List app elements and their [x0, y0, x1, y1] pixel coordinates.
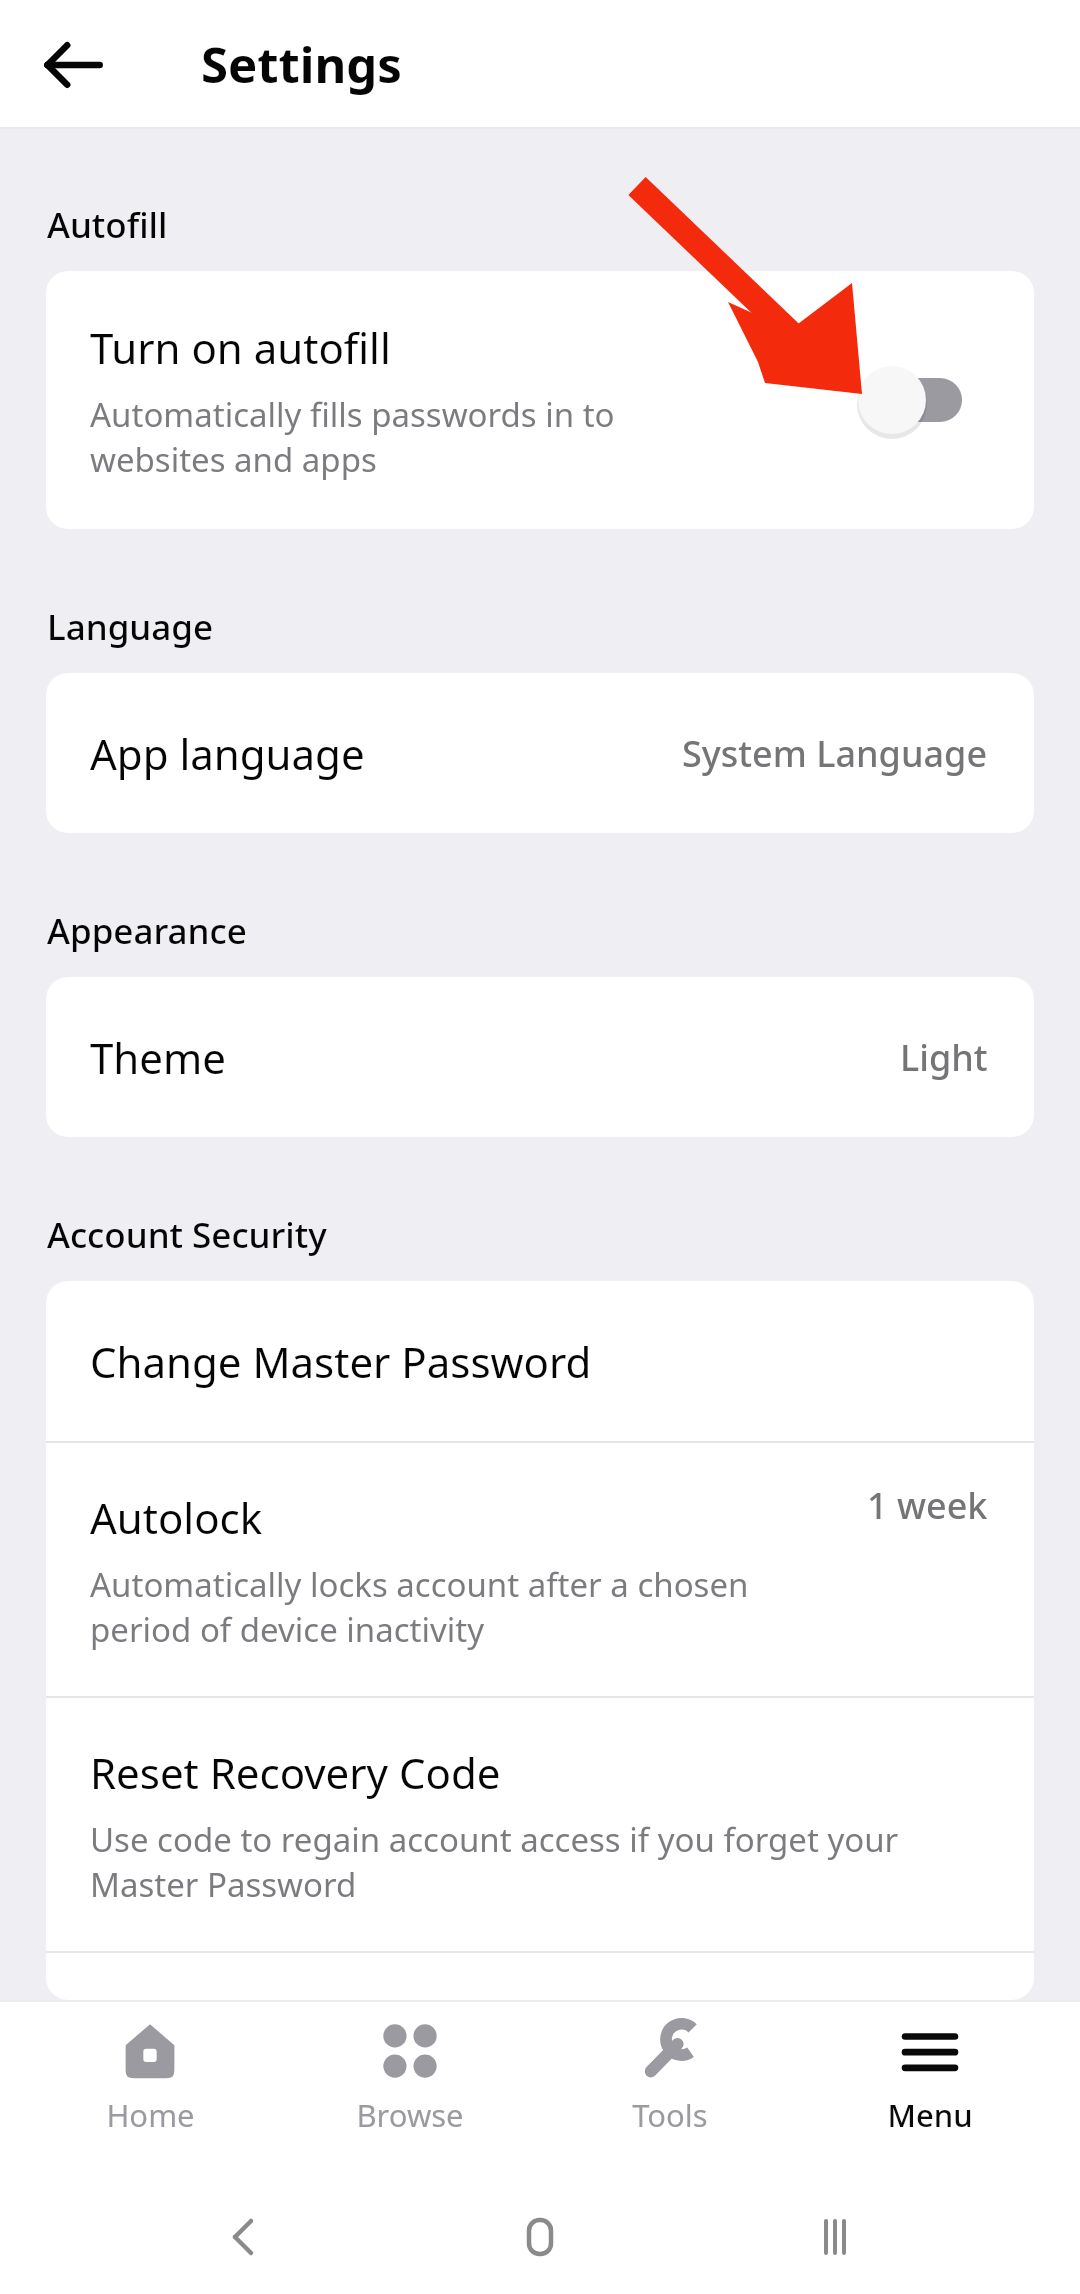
staticText: Theme [90, 1029, 226, 1086]
button[interactable]: Back [195, 2187, 295, 2287]
staticText: Reset Recovery Code [90, 1744, 501, 1801]
staticText: Appearance [47, 907, 247, 955]
button[interactable]: Change Master Password [46, 1281, 1034, 1441]
staticText: System Language [682, 729, 988, 778]
button[interactable]: Back [28, 20, 118, 110]
staticText: Tools [632, 2094, 708, 2136]
staticText: Use code to regain account access if you… [90, 1817, 990, 1906]
button[interactable]: Tools [560, 2022, 780, 2136]
staticText: App language [90, 725, 365, 782]
button[interactable]: Reset Recovery Code [46, 1698, 1034, 1951]
staticText: Browse [356, 2094, 464, 2136]
staticText: Account Security [47, 1211, 327, 1259]
button[interactable]: Autolock [46, 1443, 1034, 1696]
staticText: Light [900, 1033, 988, 1082]
staticText: Autofill [47, 201, 168, 249]
button[interactable]: App language [46, 673, 1034, 833]
button[interactable]: Home [40, 2022, 260, 2136]
staticText: Autolock [90, 1489, 263, 1546]
staticText: Automatically fills passwords in to webs… [90, 392, 734, 481]
button[interactable]: Theme [46, 977, 1034, 1137]
staticText: Settings [201, 31, 402, 98]
staticText: Menu [887, 2094, 973, 2136]
button[interactable]: Home [490, 2187, 590, 2287]
staticText: Home [106, 2094, 195, 2136]
button[interactable]: Recent apps [785, 2187, 885, 2287]
staticText: Automatically locks account after a chos… [90, 1562, 774, 1651]
staticText: 1 week [867, 1481, 988, 1530]
staticText: Turn on autofill [90, 319, 391, 376]
button[interactable]: Menu [820, 2022, 1040, 2136]
staticText: Change Master Password [90, 1333, 592, 1390]
button[interactable]: Turn on autofill [854, 361, 962, 439]
button[interactable]: Turn on autofill [46, 271, 1034, 529]
button[interactable]: Browse [300, 2022, 520, 2136]
staticText: Language [47, 603, 214, 651]
